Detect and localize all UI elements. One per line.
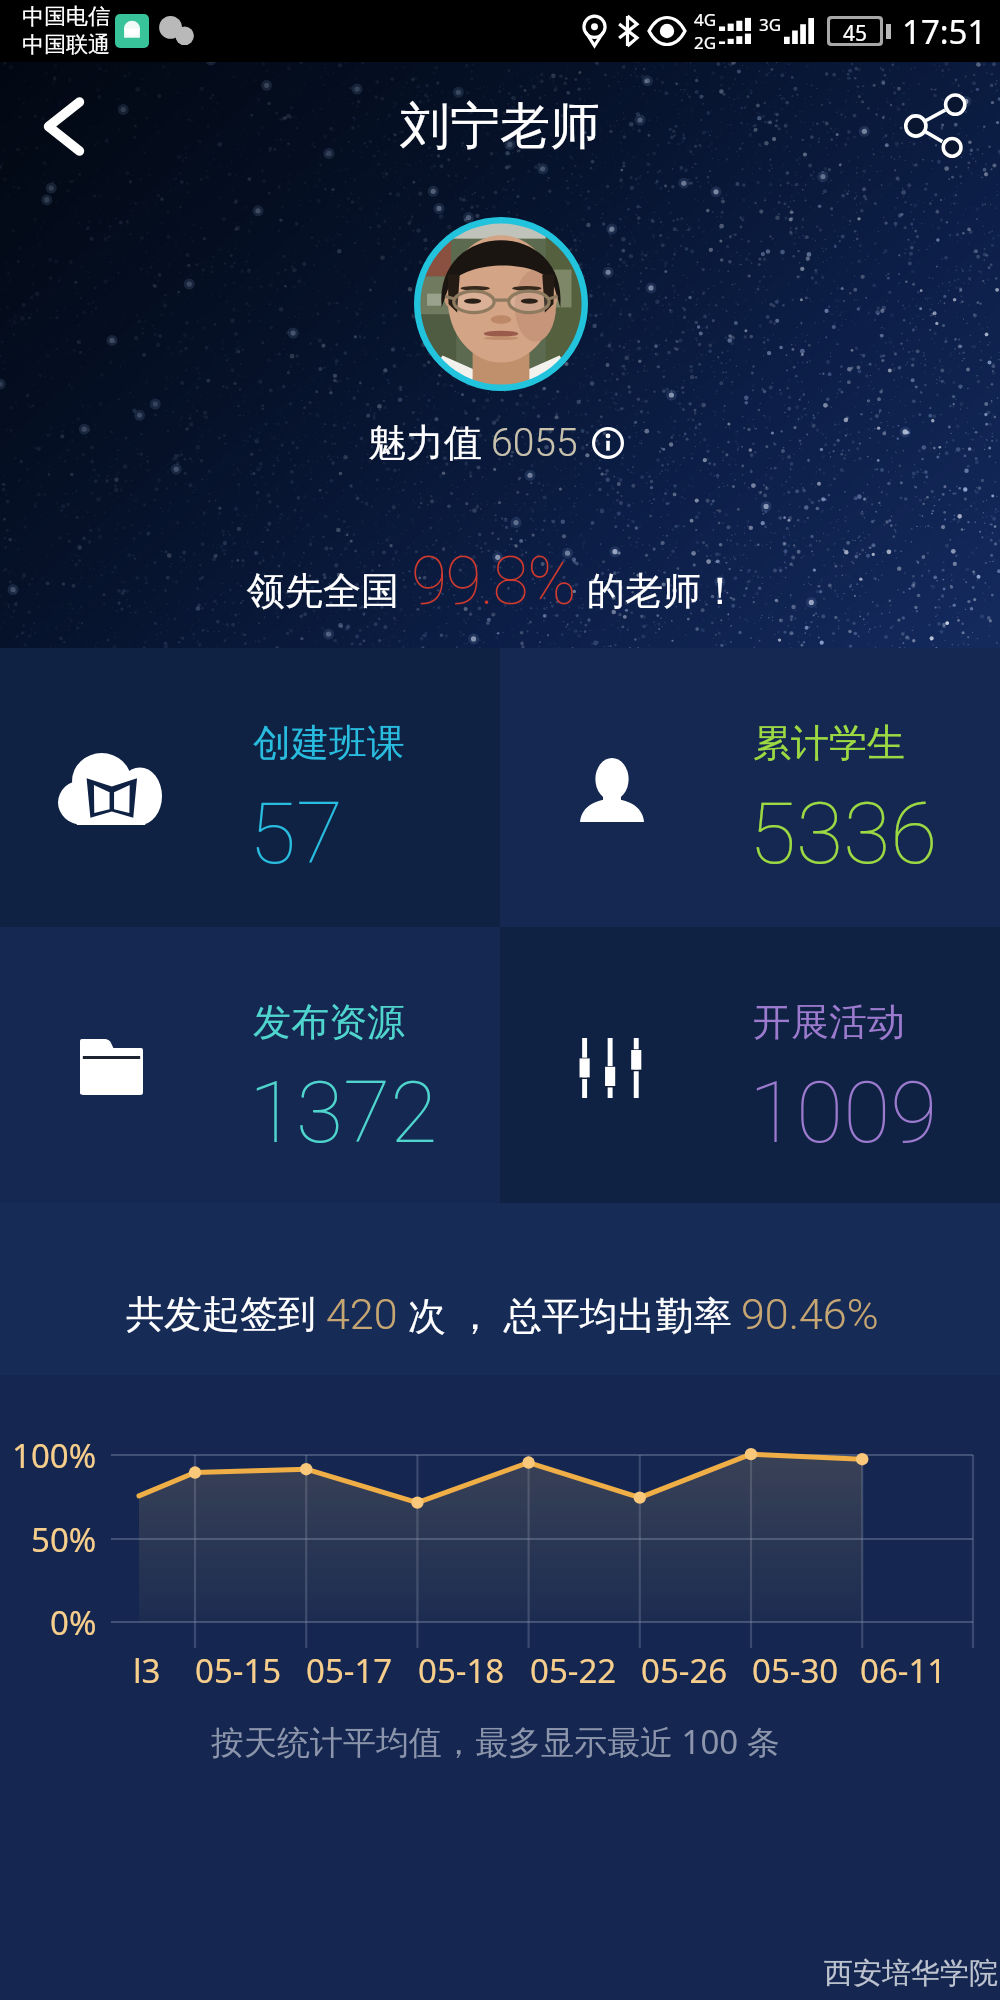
staticText: 05-22 [530,1648,617,1693]
button[interactable]: 创建班课 57 [0,648,500,927]
staticText: 西安培华学院 [824,1955,998,1992]
staticText: 的老师！ [587,567,739,615]
button[interactable]: Back [0,62,128,190]
staticText: 共发起签到 [126,1290,316,1338]
staticText: 05-17 [306,1648,393,1693]
staticText: 2G [694,31,717,54]
staticText: 5336 [749,783,938,884]
staticText: 累计学生 [753,719,905,767]
staticText: 领先全国 [247,567,399,615]
staticText: 0% [50,1600,97,1645]
staticText: 刘宁老师 [400,95,600,158]
button[interactable]: 开展活动 1009 [500,927,1000,1203]
staticText: 05-15 [195,1648,282,1693]
staticText: 90.46% [741,1289,879,1339]
button[interactable]: Profile photo [415,218,587,390]
staticText: 17:51 [902,9,987,54]
staticText: 05-18 [418,1648,505,1693]
staticText: 魅力值 [368,419,482,467]
staticText: 3G [759,13,782,36]
staticText: 发布资源 [253,998,405,1046]
staticText: 1009 [749,1062,938,1163]
staticText: 05-30 [752,1648,839,1693]
staticText: 按天统计平均值，最多显示最近 100 条 [211,1719,780,1764]
staticText: 1372 [249,1062,438,1163]
staticText: 50% [31,1517,97,1562]
staticText: 开展活动 [753,998,905,1046]
staticText: 57 [249,783,344,884]
staticText: 05-26 [641,1648,728,1693]
staticText: 次 ， 总平均出勤率 [408,1288,732,1340]
staticText: 创建班课 [253,719,405,767]
staticText: 420 [326,1289,398,1339]
button[interactable]: Share [872,62,1000,190]
staticText: 中国电信 [22,3,110,31]
staticText: 06-11 [860,1648,947,1693]
staticText: 99.8% [411,543,575,620]
button[interactable]: Info [589,424,627,462]
staticText: 6055 [491,420,578,466]
staticText: 100% [12,1433,97,1478]
button[interactable]: 发布资源 1372 [0,927,500,1203]
button[interactable]: 累计学生 5336 [500,648,1000,927]
staticText: 中国联通 [22,31,110,59]
staticText: 4G [694,8,717,31]
staticText: 45 [843,19,868,43]
staticText: l3 [133,1648,161,1693]
